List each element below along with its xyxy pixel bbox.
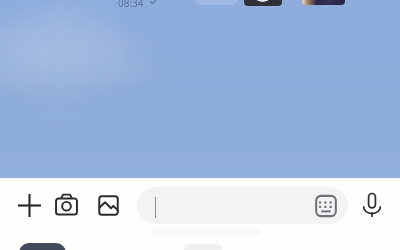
button[interactable]: Keyboard — [314, 195, 338, 217]
button[interactable] — [19, 243, 66, 250]
button[interactable]: Gallery — [98, 195, 119, 216]
button[interactable]: Voice message — [363, 193, 381, 217]
button[interactable] — [137, 187, 348, 224]
button[interactable]: Camera — [55, 193, 78, 216]
button[interactable] — [184, 244, 222, 250]
staticText: 08:34 — [118, 0, 144, 10]
button[interactable]: Add attachment — [18, 194, 41, 217]
